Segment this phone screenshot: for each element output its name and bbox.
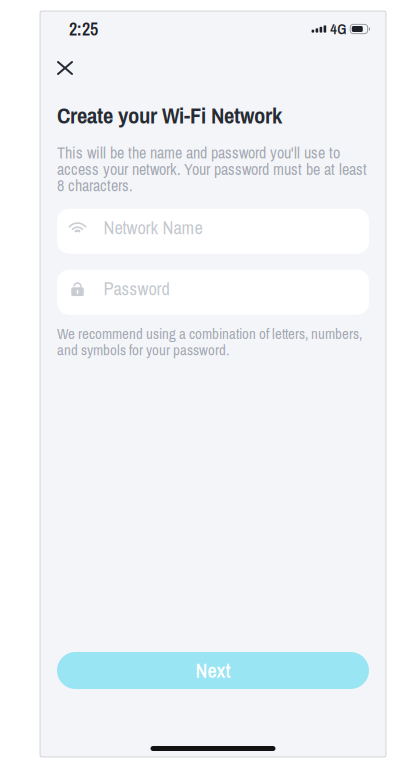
staticText: Password xyxy=(103,276,169,301)
staticText: This will be the name and password you'l… xyxy=(57,144,367,194)
staticText: Next xyxy=(195,657,230,684)
staticText: We recommend using a combination of lett… xyxy=(57,326,362,358)
staticText: 4G xyxy=(330,19,346,39)
button[interactable]: Next xyxy=(57,652,369,689)
staticText: 2:25 xyxy=(69,17,98,41)
staticText: Network Name xyxy=(103,215,202,240)
button[interactable]: Password xyxy=(57,270,369,315)
button[interactable]: Close xyxy=(40,47,89,83)
staticText: Create your Wi-Fi Network xyxy=(57,100,282,130)
button[interactable]: Network Name xyxy=(57,209,369,254)
